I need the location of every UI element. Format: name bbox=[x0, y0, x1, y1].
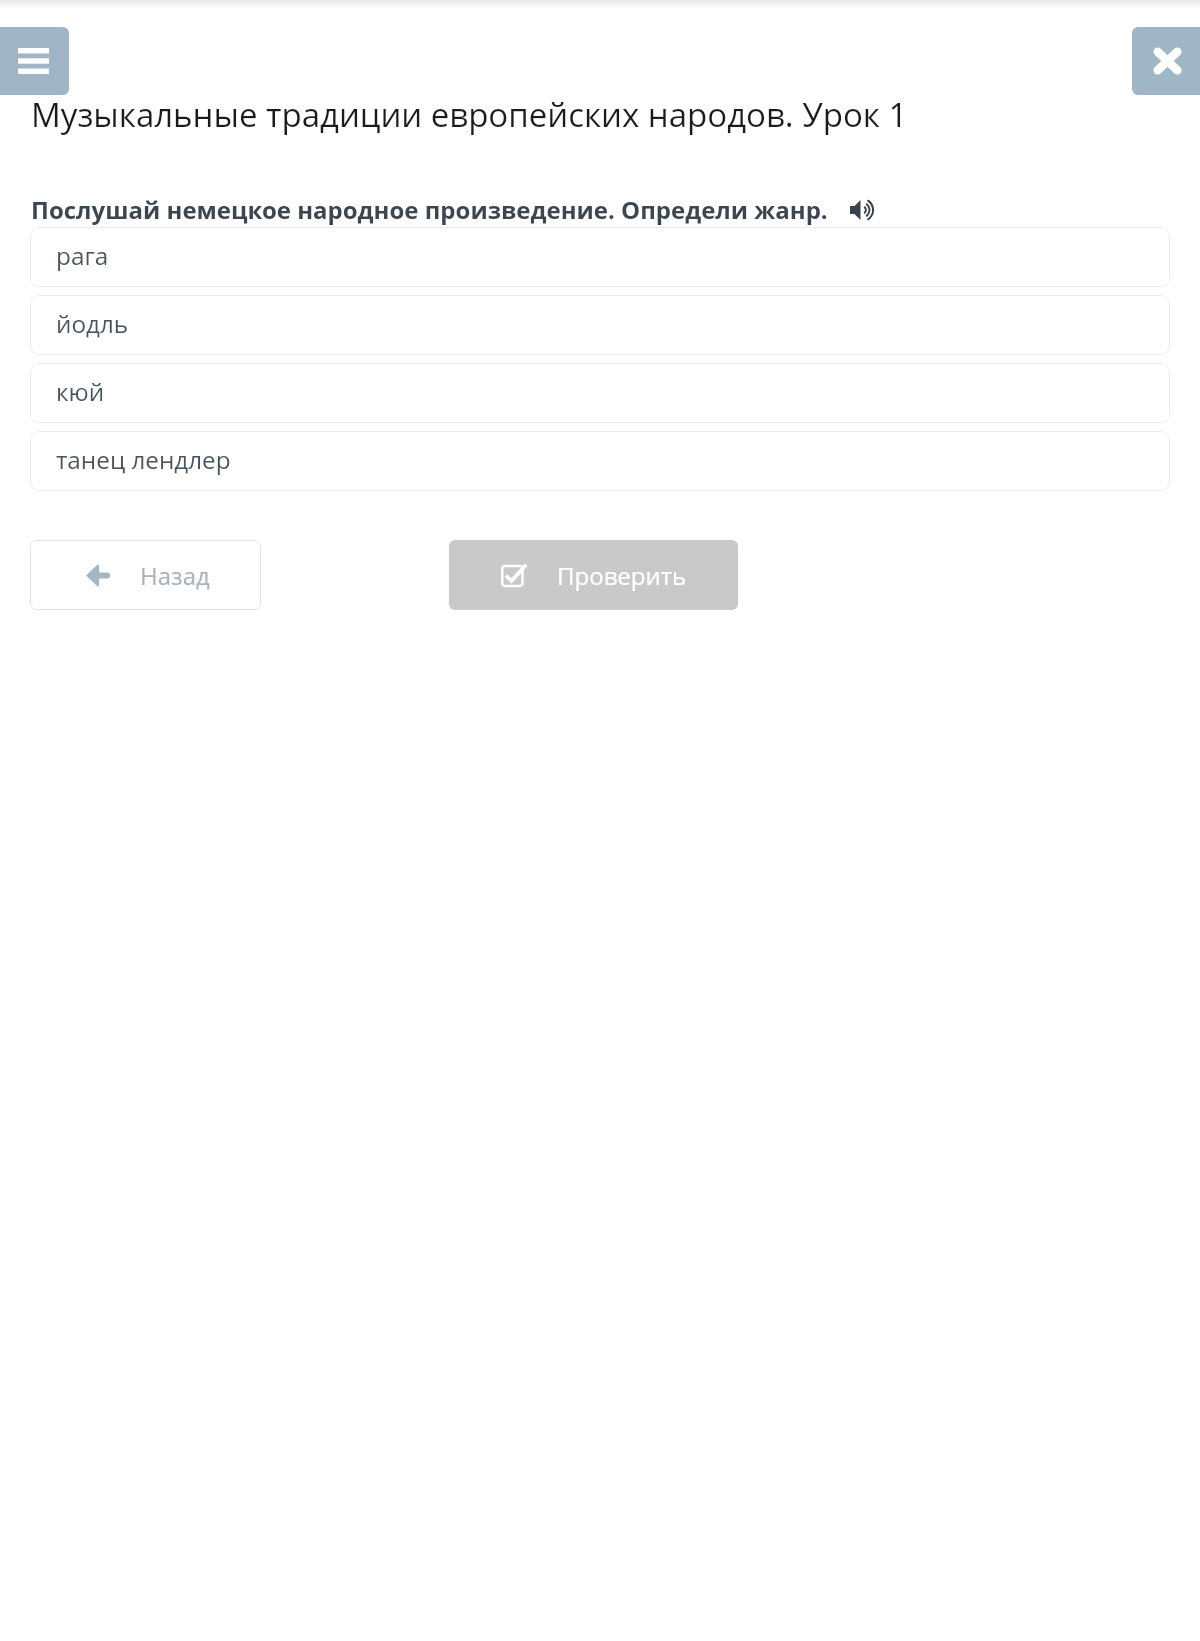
staticText: йодль bbox=[56, 307, 129, 340]
button[interactable]: йодль bbox=[30, 295, 1170, 355]
button[interactable]: рага bbox=[30, 227, 1170, 287]
staticText: Послушай немецкое народное произведение.… bbox=[31, 193, 828, 226]
button[interactable]: Play audio bbox=[846, 194, 878, 226]
button[interactable]: Проверить bbox=[449, 540, 738, 610]
button[interactable]: Menu bbox=[0, 27, 69, 95]
button[interactable]: танец лендлер bbox=[30, 431, 1170, 491]
staticText: Проверить bbox=[557, 559, 687, 592]
staticText: Музыкальные традиции европейских народов… bbox=[31, 92, 908, 137]
button[interactable]: кюй bbox=[30, 363, 1170, 423]
staticText: рага bbox=[56, 239, 109, 272]
staticText: танец лендлер bbox=[56, 443, 231, 476]
staticText: Назад bbox=[140, 559, 210, 592]
staticText: кюй bbox=[56, 375, 105, 408]
button[interactable]: Назад bbox=[30, 540, 261, 610]
button[interactable]: Close bbox=[1132, 27, 1200, 95]
